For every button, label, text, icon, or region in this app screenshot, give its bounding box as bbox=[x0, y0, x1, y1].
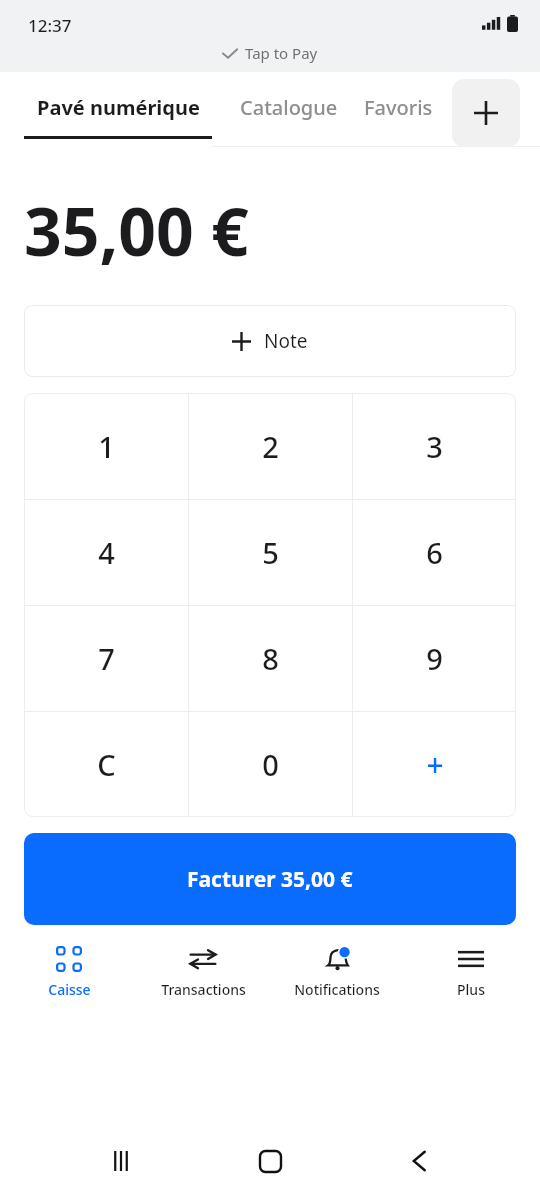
staticText: Note bbox=[264, 328, 308, 354]
button[interactable]: 9 bbox=[353, 606, 516, 711]
button[interactable]: 6 bbox=[353, 500, 516, 605]
button[interactable]: 7 bbox=[24, 606, 188, 711]
staticText: Pavé numérique bbox=[37, 94, 200, 121]
button[interactable]: 4 bbox=[24, 500, 188, 605]
button[interactable]: C bbox=[24, 712, 188, 817]
button[interactable]: Plus bbox=[406, 939, 536, 1005]
staticText: Favoris bbox=[364, 94, 433, 121]
button[interactable]: Back bbox=[391, 1133, 447, 1189]
staticText: 9 bbox=[426, 639, 443, 678]
staticText: Plus bbox=[457, 980, 485, 999]
staticText: 5 bbox=[262, 533, 279, 572]
staticText: 35,00 € bbox=[24, 185, 249, 275]
staticText: Caisse bbox=[48, 980, 91, 999]
button[interactable]: 5 bbox=[189, 500, 352, 605]
staticText: 8 bbox=[262, 639, 279, 678]
button[interactable]: Note bbox=[24, 305, 516, 377]
staticText: 4 bbox=[98, 533, 115, 572]
staticText: Catalogue bbox=[240, 94, 338, 121]
button[interactable]: Home bbox=[242, 1133, 298, 1189]
staticText: 12:37 bbox=[28, 14, 72, 37]
button[interactable]: Facturer 35,00 € bbox=[24, 833, 516, 925]
button[interactable]: 0 bbox=[189, 712, 352, 817]
button[interactable]: Favoris bbox=[362, 97, 435, 132]
button[interactable]: Pavé numérique bbox=[35, 90, 202, 125]
button[interactable]: Catalogue bbox=[238, 97, 340, 132]
button[interactable]: Add bbox=[452, 79, 520, 147]
staticText: 0 bbox=[262, 745, 279, 784]
button[interactable]: Recent apps bbox=[93, 1133, 149, 1189]
button[interactable]: Caisse bbox=[4, 939, 134, 1005]
button[interactable]: 3 bbox=[353, 393, 516, 499]
staticText: Transactions bbox=[161, 980, 246, 999]
staticText: 3 bbox=[426, 427, 443, 466]
button[interactable]: Notifications bbox=[272, 939, 402, 1005]
button[interactable]: 2 bbox=[189, 393, 352, 499]
staticText: Tap to Pay bbox=[245, 43, 318, 63]
staticText: C bbox=[97, 745, 116, 784]
button[interactable]: + bbox=[353, 712, 516, 817]
staticText: 1 bbox=[98, 427, 115, 466]
staticText: 6 bbox=[426, 533, 443, 572]
staticText: Facturer 35,00 € bbox=[187, 865, 353, 894]
staticText: 2 bbox=[262, 427, 279, 466]
staticText: 7 bbox=[98, 639, 115, 678]
button[interactable]: 1 bbox=[24, 393, 188, 499]
staticText: + bbox=[426, 744, 444, 785]
button[interactable]: Transactions bbox=[138, 939, 268, 1005]
button[interactable]: 8 bbox=[189, 606, 352, 711]
staticText: Notifications bbox=[294, 980, 380, 999]
